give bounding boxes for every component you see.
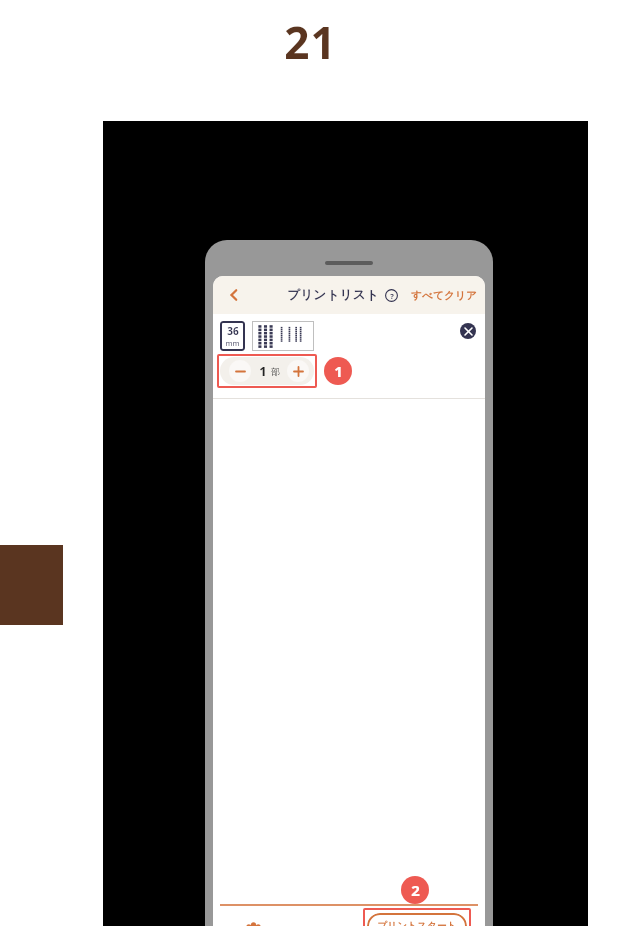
staticText: ? [390, 291, 394, 301]
staticText: 2 [411, 880, 420, 900]
button[interactable]: プリントスタート [367, 913, 467, 926]
button[interactable]: Settings [238, 916, 268, 926]
staticText: プリントリスト [287, 287, 379, 303]
button[interactable]: Remove [460, 323, 476, 339]
staticText: プリントスタート [377, 920, 457, 926]
button[interactable]: Back [219, 280, 249, 310]
staticText: mm [225, 338, 240, 348]
staticText: 1 [334, 361, 343, 381]
staticText: 36 [227, 324, 239, 338]
button[interactable]: すべてクリア [409, 285, 479, 306]
staticText: 部 [271, 366, 280, 377]
button[interactable]: Decrease [229, 360, 251, 382]
staticText: 21 [284, 12, 337, 72]
staticText: 1 [259, 362, 267, 380]
button[interactable]: Increase [287, 360, 309, 382]
staticText: すべてクリア [411, 289, 477, 302]
button[interactable]: Help [384, 288, 399, 303]
